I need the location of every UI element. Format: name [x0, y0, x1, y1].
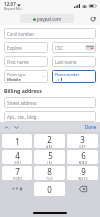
button[interactable]: Previous field — [3, 124, 10, 131]
staticText: First name — [7, 59, 29, 65]
staticText: 7 — [15, 166, 20, 177]
staticText: Apt., ste., bldg. — [7, 114, 38, 120]
staticText: P Q R S — [13, 177, 22, 180]
staticText: Done — [85, 124, 97, 130]
staticText: W X Y Z — [78, 177, 88, 180]
button[interactable]: 3 — [67, 134, 98, 148]
staticText: A B C — [46, 145, 53, 148]
staticText: Street address — [7, 100, 37, 106]
staticText: J K L — [47, 161, 53, 164]
staticText: D E F — [79, 145, 86, 148]
staticText: 6 — [81, 150, 86, 161]
button[interactable]: + * # — [2, 182, 32, 196]
staticText: 3 — [80, 134, 85, 145]
staticText: 0 — [47, 184, 52, 195]
button[interactable]: Reload page — [88, 14, 97, 23]
staticText: 5 — [48, 150, 53, 161]
button[interactable]: Expires — [4, 42, 48, 53]
button[interactable]: 2 — [34, 134, 65, 148]
staticText: Billing address — [4, 87, 42, 94]
button[interactable]: Card number — [4, 28, 96, 39]
staticText: M N O — [79, 161, 87, 164]
button[interactable]: 5 — [34, 150, 65, 164]
button[interactable]: Street address — [4, 97, 96, 108]
button[interactable]: Done — [85, 124, 97, 130]
staticText: CSC — [55, 45, 63, 51]
staticText: 9 — [81, 166, 86, 177]
staticText: + * # — [12, 186, 23, 192]
staticText: 12:07 — [4, 1, 16, 7]
staticText: T U V — [46, 177, 53, 180]
button[interactable]: 6 — [67, 150, 98, 164]
staticText: paypal.com — [37, 16, 62, 22]
staticText: Beyond Me… — [4, 7, 24, 11]
button[interactable]: CSC — [52, 42, 96, 53]
button[interactable]: Phone type: — [4, 70, 48, 83]
button[interactable]: 8 — [34, 166, 65, 180]
staticText: Mobile — [7, 77, 21, 81]
staticText: G H I — [14, 161, 21, 164]
staticText: 4 — [15, 150, 20, 161]
button[interactable]: 4 — [2, 150, 32, 164]
button[interactable]: Delete — [67, 182, 98, 196]
button[interactable]: First name — [4, 56, 48, 67]
button[interactable]: Phone number — [52, 70, 96, 83]
staticText: Card number — [7, 31, 35, 37]
staticText: 8 — [47, 166, 52, 177]
staticText: 1 — [15, 136, 20, 147]
staticText: Last name — [55, 59, 77, 65]
button[interactable]: paypal.com — [20, 14, 74, 23]
staticText: +1 — [55, 78, 60, 81]
staticText: Phone number — [55, 72, 80, 77]
button[interactable]: Apt., ste., bldg. — [4, 111, 96, 122]
button[interactable]: 0 — [34, 182, 65, 196]
staticText: 2 — [47, 134, 52, 145]
button[interactable]: Last name — [52, 56, 96, 67]
button[interactable]: 9 — [67, 166, 98, 180]
button[interactable]: Next field — [13, 124, 20, 131]
staticText: Phone type: — [7, 72, 26, 77]
button[interactable]: 1 — [2, 134, 32, 148]
button[interactable]: 7 — [2, 166, 32, 180]
staticText: Expires — [7, 45, 22, 51]
